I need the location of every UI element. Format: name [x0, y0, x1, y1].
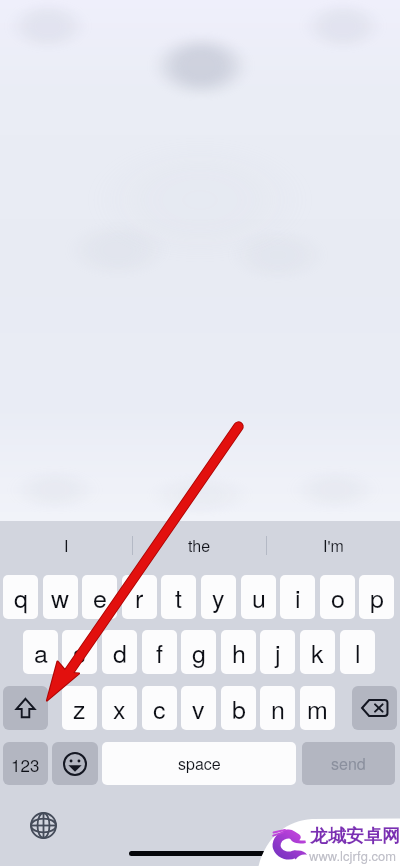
staticText: d [113, 634, 127, 670]
staticText: the [188, 534, 211, 557]
button[interactable]: g [181, 630, 216, 674]
button[interactable]: y [201, 575, 236, 619]
staticText: y [212, 579, 225, 615]
staticText: n [271, 690, 285, 726]
staticText: q [14, 579, 28, 615]
button[interactable]: v [181, 686, 216, 730]
button[interactable]: b [221, 686, 256, 730]
button[interactable]: r [122, 575, 157, 619]
button[interactable]: f [142, 630, 177, 674]
staticText: 龙城安卓网 [310, 825, 400, 848]
button[interactable]: Emoji [52, 742, 98, 785]
button[interactable]: Shift [3, 686, 48, 730]
button[interactable]: k [300, 630, 335, 674]
staticText: send [331, 752, 366, 775]
staticText: f [156, 634, 163, 670]
staticText: r [135, 579, 144, 615]
staticText: w [51, 579, 70, 615]
staticText: b [232, 690, 246, 726]
button[interactable]: t [161, 575, 196, 619]
button[interactable]: p [359, 575, 394, 619]
button[interactable]: Change keyboard language [25, 807, 61, 843]
button[interactable]: l [340, 630, 375, 674]
staticText: v [192, 690, 205, 726]
button[interactable]: e [82, 575, 117, 619]
button[interactable]: Backspace [352, 686, 397, 730]
staticText: s [73, 634, 86, 670]
button[interactable]: w [43, 575, 78, 619]
staticText: I'm [323, 534, 344, 557]
button[interactable]: c [142, 686, 177, 730]
button[interactable]: h [221, 630, 256, 674]
staticText: h [232, 634, 246, 670]
staticText: l [355, 634, 361, 670]
button[interactable]: I'm [267, 521, 400, 569]
staticText: o [331, 579, 345, 615]
staticText: k [311, 634, 324, 670]
staticText: g [192, 634, 206, 670]
staticText: www.lcjrfg.com [309, 846, 397, 865]
button[interactable]: a [23, 630, 58, 674]
button[interactable]: d [102, 630, 137, 674]
staticText: space [178, 752, 221, 775]
button[interactable]: j [260, 630, 295, 674]
staticText: j [275, 634, 281, 670]
staticText: i [295, 579, 301, 615]
button[interactable]: the [133, 521, 266, 569]
button[interactable]: o [320, 575, 355, 619]
button[interactable]: send [302, 742, 395, 785]
button[interactable]: q [3, 575, 38, 619]
staticText: t [175, 579, 182, 615]
staticText: e [93, 579, 107, 615]
button[interactable]: space [102, 742, 296, 785]
staticText: 123 [11, 752, 40, 776]
button[interactable]: I [0, 521, 132, 569]
button[interactable]: s [62, 630, 97, 674]
staticText: p [370, 579, 384, 615]
button[interactable]: n [260, 686, 295, 730]
staticText: m [307, 690, 328, 726]
button[interactable]: u [241, 575, 276, 619]
staticText: I [64, 534, 69, 557]
staticText: x [113, 690, 126, 726]
staticText: c [153, 690, 166, 726]
button[interactable]: i [280, 575, 315, 619]
button[interactable]: m [300, 686, 335, 730]
staticText: u [252, 579, 266, 615]
button[interactable]: z [62, 686, 97, 730]
button[interactable]: Numbers and symbols [3, 742, 48, 785]
staticText: z [73, 690, 86, 726]
button[interactable]: x [102, 686, 137, 730]
staticText: a [34, 634, 48, 670]
